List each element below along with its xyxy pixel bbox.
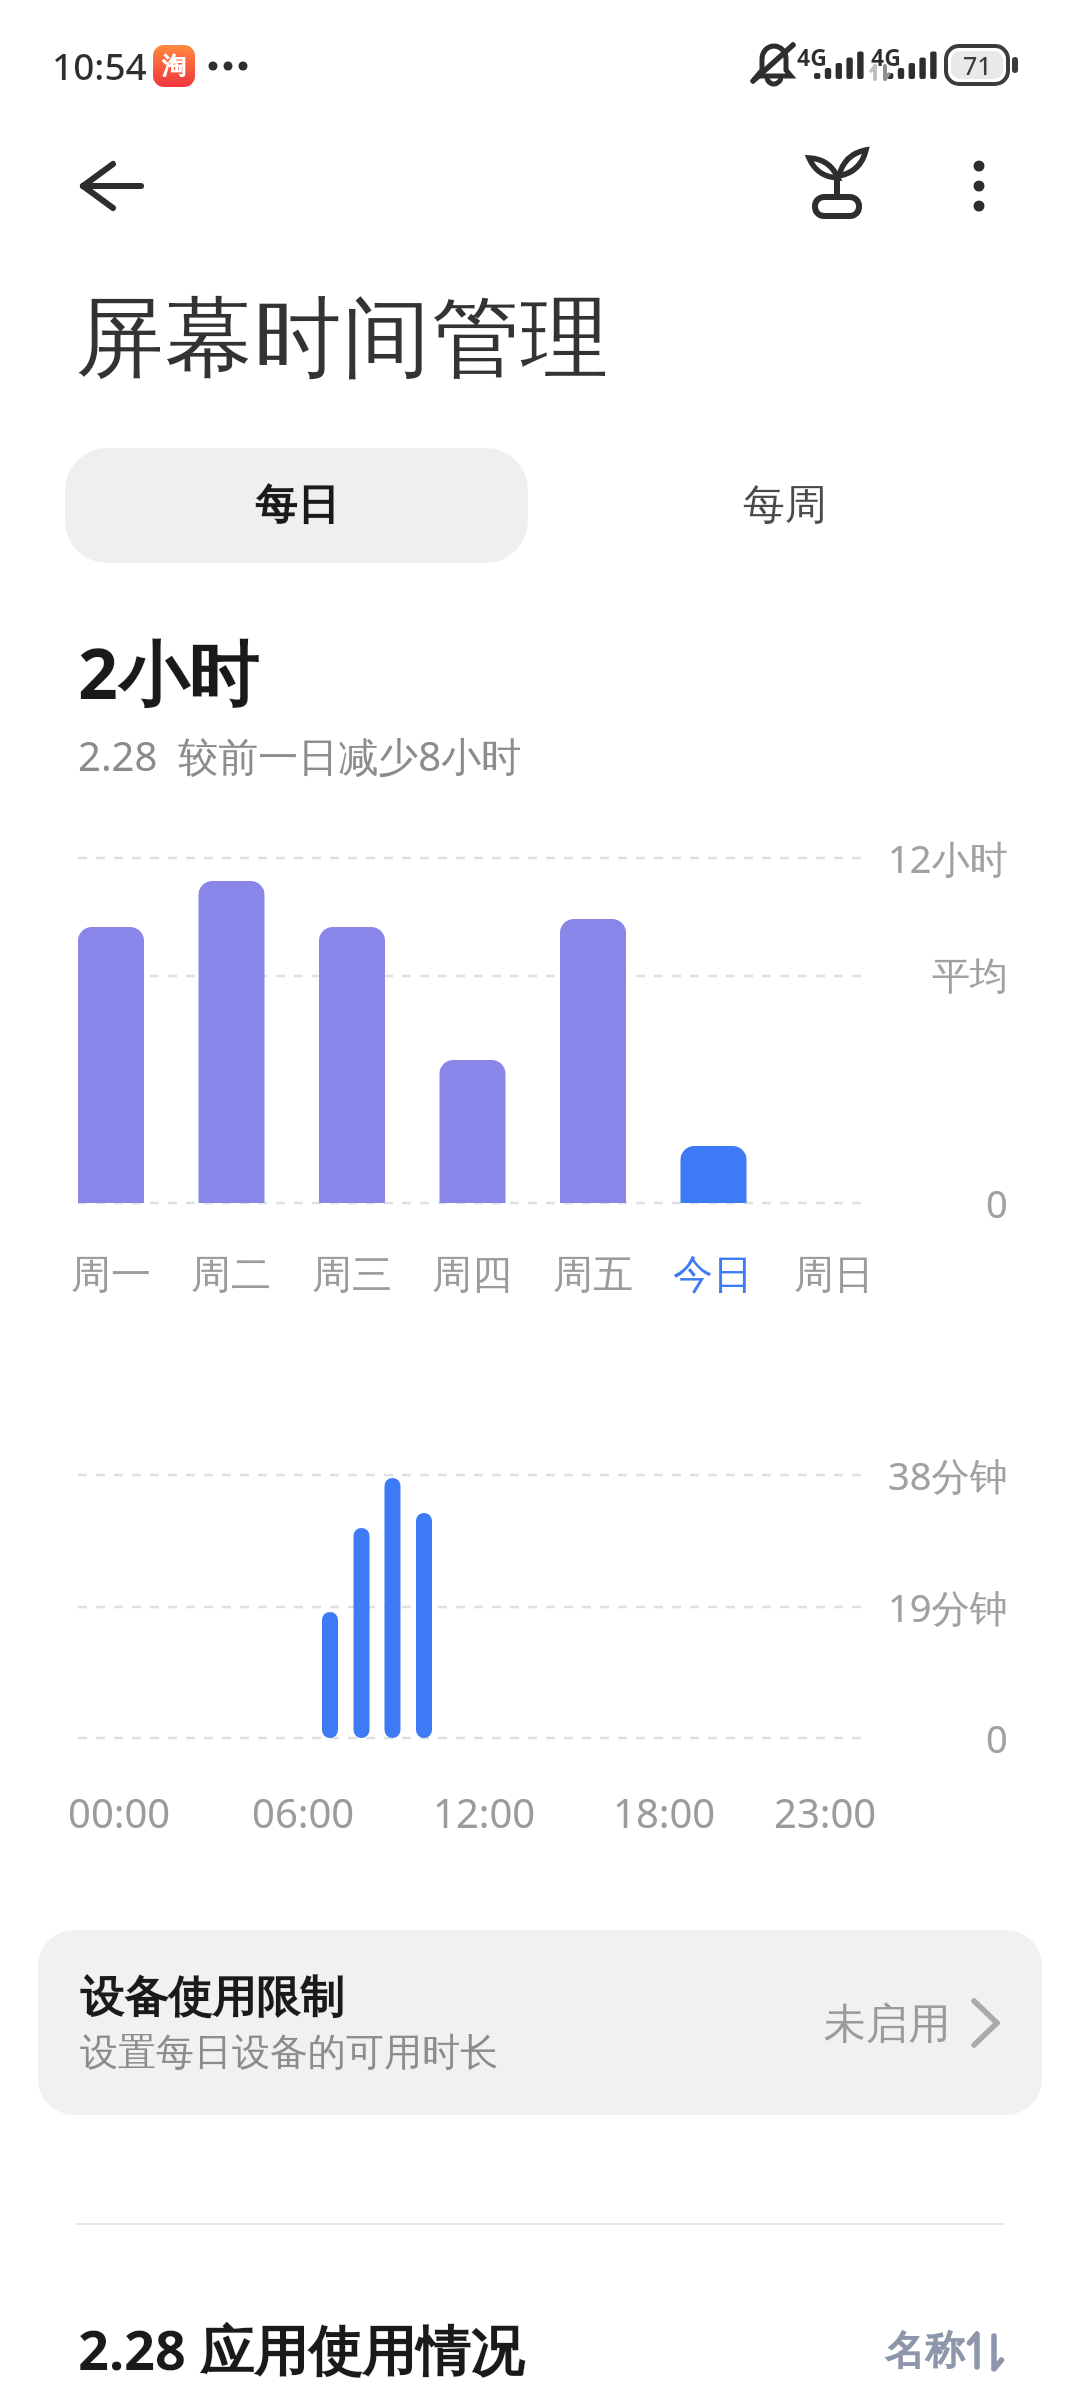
staticText: 00:00 <box>68 1785 171 1839</box>
button[interactable] <box>880 2315 1010 2385</box>
staticText: 名称 <box>885 2325 965 2375</box>
staticText: 每日 <box>255 479 339 532</box>
staticText: 23:00 <box>774 1785 877 1839</box>
staticText: 06:00 <box>252 1785 355 1839</box>
staticText: 12小时 <box>888 832 1008 884</box>
staticText: 18:00 <box>613 1785 716 1839</box>
staticText: 周四 <box>432 1249 512 1299</box>
staticText: 周五 <box>553 1249 633 1299</box>
button[interactable] <box>934 140 1024 230</box>
staticText: 2.28 较前一日减少8小时 <box>78 728 522 783</box>
staticText: 平均 <box>932 952 1008 1000</box>
staticText: 淘 <box>162 51 186 81</box>
staticText: 12:00 <box>433 1785 536 1839</box>
staticText: 2.28 应用使用情况 <box>78 2312 524 2386</box>
staticText: 4G <box>871 41 901 72</box>
button[interactable] <box>790 140 880 230</box>
staticText: 周二 <box>191 1249 271 1299</box>
staticText: 4G <box>797 41 827 72</box>
staticText: 71 <box>963 48 992 82</box>
staticText: 2小时 <box>78 624 259 720</box>
button[interactable] <box>38 1930 1042 2115</box>
staticText: 0 <box>986 1712 1008 1764</box>
staticText: 周日 <box>794 1249 874 1299</box>
staticText: 设置每日设备的可用时长 <box>80 2028 498 2076</box>
staticText: 0 <box>986 1177 1008 1229</box>
staticText: 未启用 <box>824 1998 950 2051</box>
button[interactable] <box>60 150 160 222</box>
staticText: 设备使用限制 <box>80 1970 344 2025</box>
staticText: 周一 <box>71 1249 151 1299</box>
staticText: 每周 <box>743 479 827 532</box>
staticText: 38分钟 <box>888 1449 1008 1501</box>
staticText: 10:54 <box>52 40 147 90</box>
button[interactable]: 每周 <box>528 448 1042 563</box>
staticText: 周三 <box>312 1249 392 1299</box>
staticText: 今日 <box>673 1249 753 1299</box>
button[interactable]: 每日 <box>65 448 528 563</box>
staticText: 19分钟 <box>888 1581 1008 1633</box>
staticText: 屏幕时间管理 <box>75 283 609 394</box>
